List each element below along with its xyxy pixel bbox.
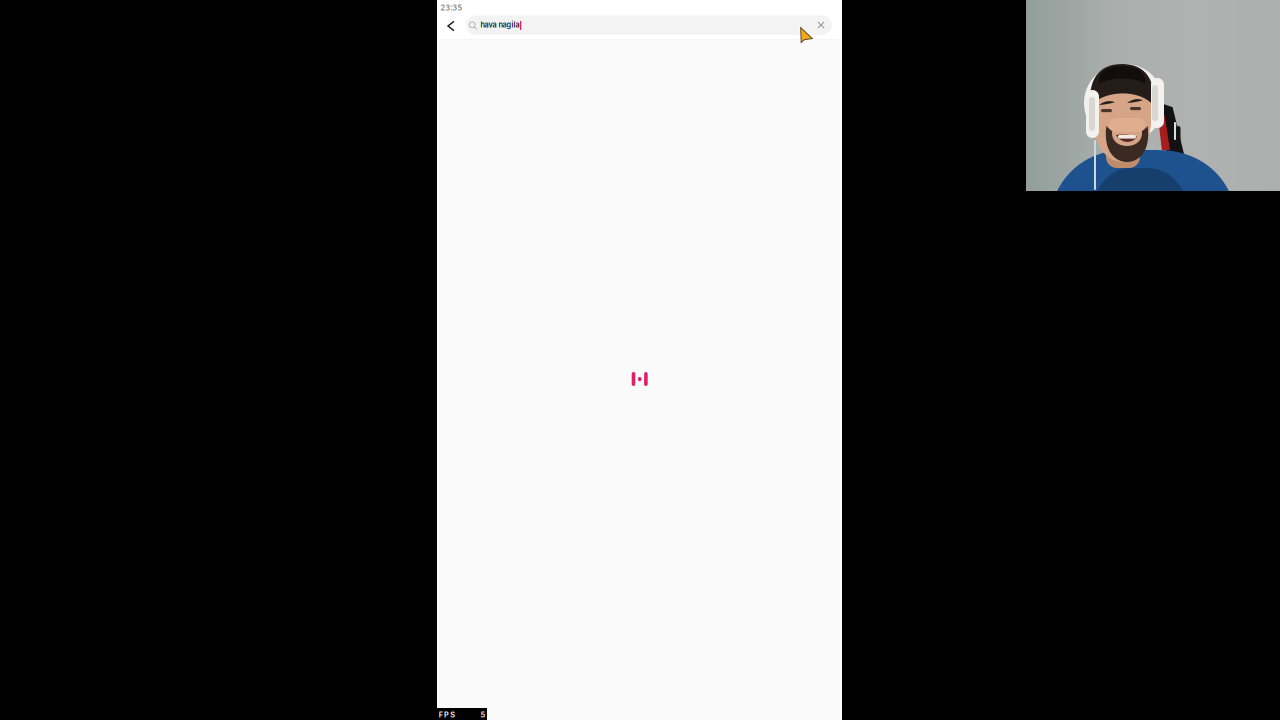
staticText: hava nagila xyxy=(480,20,519,29)
button[interactable]: Back xyxy=(439,12,463,40)
staticText: 5 xyxy=(480,710,485,719)
staticText: 23:35 xyxy=(440,2,462,13)
staticText: FPS xyxy=(439,710,455,719)
button[interactable]: Clear search xyxy=(812,16,830,34)
